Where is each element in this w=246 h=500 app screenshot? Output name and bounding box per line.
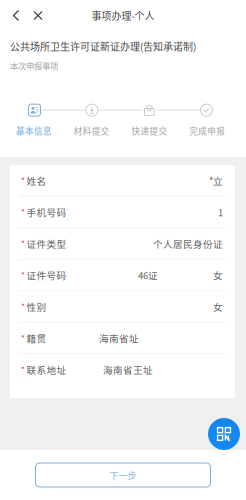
staticText: 女	[213, 268, 223, 282]
staticText: 姓名	[26, 173, 46, 187]
button[interactable]: 扫一扫	[208, 418, 240, 450]
staticText: *	[21, 175, 25, 186]
button[interactable]: *	[10, 291, 235, 323]
staticText: *	[21, 364, 25, 375]
staticText: 联系地址	[26, 362, 66, 376]
staticText: 事项办理-个人	[91, 8, 154, 23]
button[interactable]: 返回	[5, 0, 27, 31]
staticText: 个人居民身份证	[153, 236, 223, 250]
button[interactable]: *	[10, 354, 235, 386]
staticText: *立	[209, 173, 223, 187]
button[interactable]: *	[10, 260, 235, 291]
staticText: 46证	[138, 268, 158, 282]
staticText: 证件号码	[26, 268, 66, 282]
staticText: 女	[213, 299, 223, 313]
staticText: *	[21, 238, 25, 249]
staticText: 1	[218, 205, 223, 219]
staticText: 手机号码	[26, 205, 66, 219]
staticText: 完成申报	[189, 125, 225, 137]
button[interactable]: 下一步	[35, 463, 210, 487]
staticText: 基本信息	[16, 125, 52, 137]
staticText: *	[21, 206, 25, 218]
button[interactable]: *	[10, 165, 235, 197]
button[interactable]: *	[10, 228, 235, 260]
button[interactable]: 关闭	[27, 0, 49, 31]
staticText: 海南省址	[99, 331, 139, 345]
staticText: 本次申报事项	[10, 59, 58, 72]
button[interactable]: *	[10, 197, 235, 228]
staticText: 证件类型	[26, 236, 66, 250]
button[interactable]: *	[10, 323, 235, 354]
staticText: 快递提交	[131, 125, 167, 137]
staticText: *	[21, 269, 25, 281]
staticText: 材料提交	[74, 125, 110, 137]
staticText: 下一步	[109, 468, 136, 481]
staticText: 性别	[26, 299, 46, 313]
staticText: 海南省王址	[103, 362, 153, 376]
staticText: *	[21, 301, 25, 312]
staticText: 籍贯	[26, 331, 46, 345]
staticText: 公共场所卫生许可证新证办理(告知承诺制)	[10, 39, 196, 53]
staticText: *	[21, 332, 25, 344]
